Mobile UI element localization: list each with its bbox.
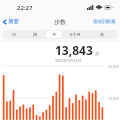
button[interactable]: 周 [25,31,46,38]
staticText: 10,000 [108,96,119,101]
staticText: 20,000 [108,64,119,69]
button[interactable]: 年 [89,31,116,38]
staticText: 步数 [54,18,66,26]
staticText: 摘要 [8,18,19,25]
staticText: 周 [33,32,38,37]
button[interactable]: 日 [4,31,25,38]
staticText: 步 [95,51,100,57]
staticText: 22:27 [17,4,33,12]
staticText: 13,843 [55,42,93,58]
button[interactable]: 6个月 [62,31,89,38]
button[interactable]: 添加到收藏 [90,19,120,25]
staticText: 6个月 [70,32,81,38]
button[interactable]: 月 [46,31,62,38]
staticText: 月 [52,32,57,37]
button[interactable]: 摘要 [0,18,22,25]
staticText: 年 [100,32,105,37]
staticText: 2025年3月16日 [55,58,82,63]
staticText: 日 [12,32,17,37]
